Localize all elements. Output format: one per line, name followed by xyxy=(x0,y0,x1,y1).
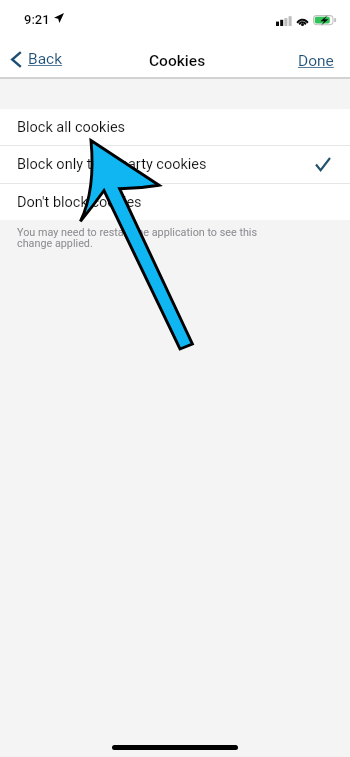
staticText: Cookies xyxy=(149,52,206,70)
staticText: Don't block cookies xyxy=(17,194,142,211)
staticText: Block all cookies xyxy=(17,119,126,136)
button[interactable]: Don't block cookies xyxy=(0,184,350,220)
other: Battery charging xyxy=(313,15,336,26)
other: Wi-Fi xyxy=(296,16,309,26)
staticText: Block only third-party cookies xyxy=(17,156,207,173)
staticText: 9:21 xyxy=(24,12,50,27)
button[interactable]: Block all cookies xyxy=(0,109,350,145)
other: Location xyxy=(54,13,64,23)
other: Cellular signal xyxy=(276,16,292,26)
staticText: Back xyxy=(28,50,63,68)
button[interactable]: Done xyxy=(298,52,350,70)
button[interactable]: Back xyxy=(11,50,63,68)
button[interactable]: Block only third-party cookies xyxy=(0,146,350,183)
staticText: You may need to restart the application … xyxy=(17,226,258,249)
